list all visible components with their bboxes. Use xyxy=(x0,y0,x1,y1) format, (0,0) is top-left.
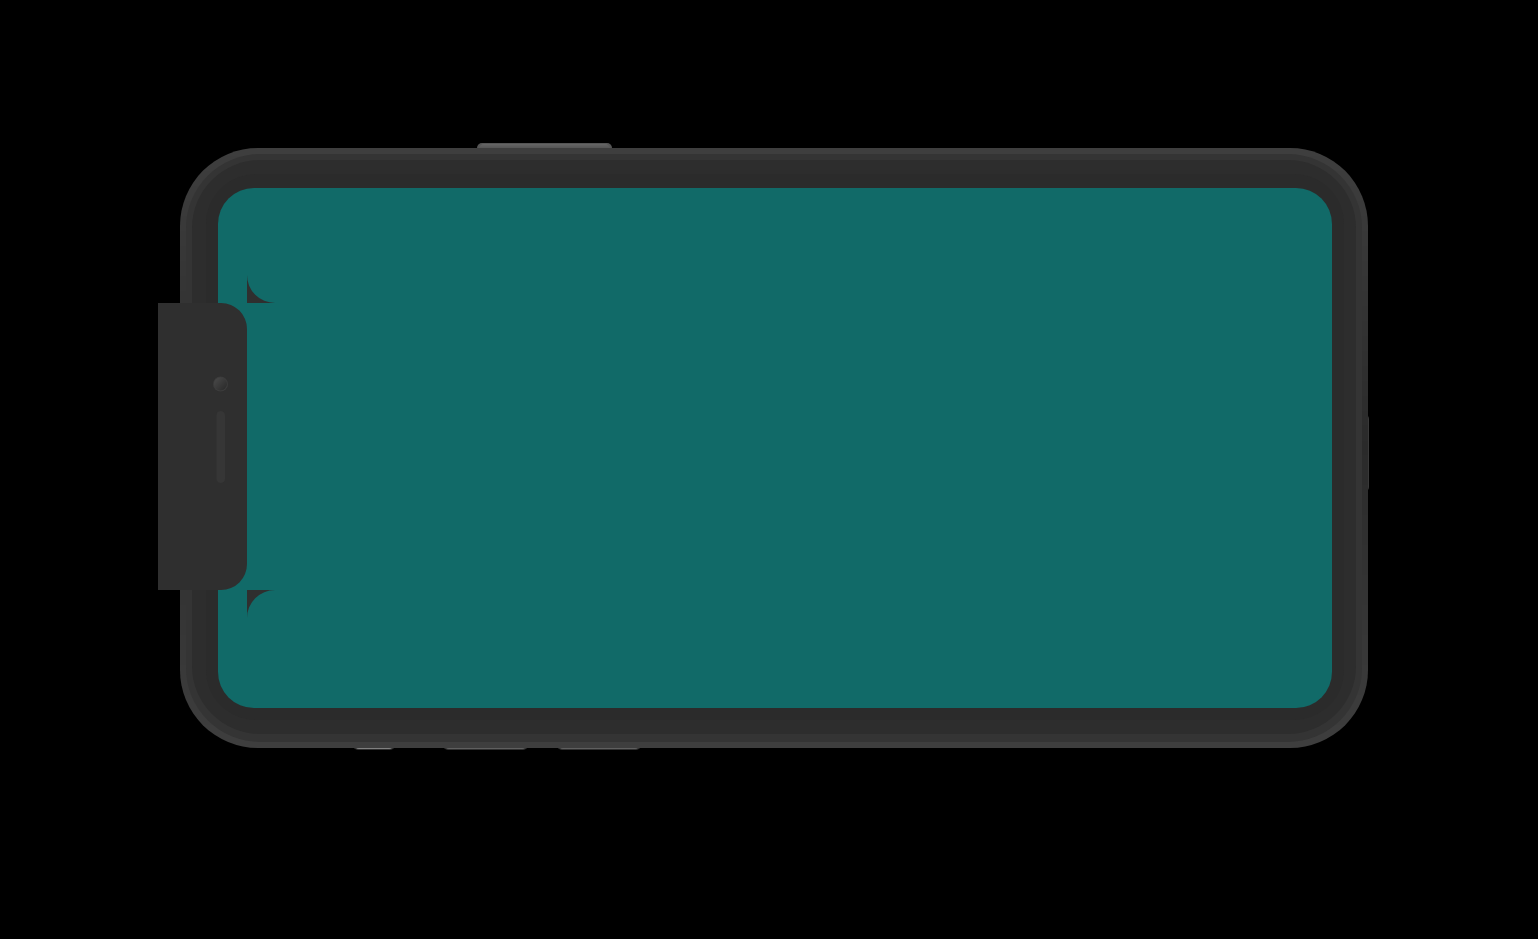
button[interactable]: Phone device mockup with teal screen xyxy=(0,0,1538,939)
